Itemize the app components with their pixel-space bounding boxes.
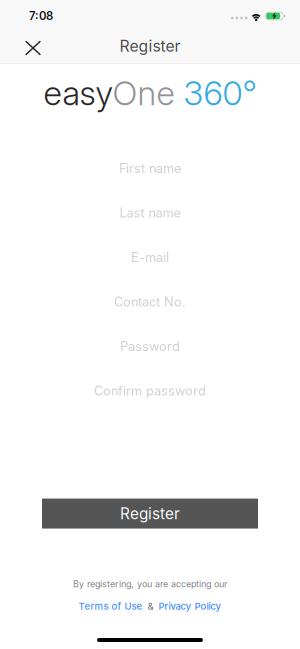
button[interactable]: Close: [25, 32, 63, 64]
button[interactable]: Register: [42, 499, 258, 529]
button[interactable]: Last name: [42, 198, 258, 228]
staticText: E-mail: [131, 250, 169, 265]
button[interactable]: Contact No.: [42, 287, 258, 317]
staticText: Contact No.: [114, 294, 186, 309]
button[interactable]: E-mail: [42, 242, 258, 272]
staticText: One: [112, 73, 174, 113]
staticText: Register: [119, 36, 180, 55]
staticText: Last name: [119, 205, 180, 220]
staticText: Password: [120, 339, 180, 354]
button[interactable]: First name: [42, 153, 258, 183]
staticText: Register: [120, 504, 180, 523]
staticText: Terms of Use: [78, 600, 142, 612]
staticText: Privacy Policy: [158, 600, 221, 612]
button[interactable]: Terms of Use: [78, 600, 147, 612]
staticText: First name: [119, 161, 181, 176]
button[interactable]: Password: [42, 331, 258, 361]
staticText: By registering, you are accepting our: [73, 579, 227, 589]
staticText: Confirm password: [94, 383, 206, 398]
staticText: easy: [43, 73, 112, 113]
staticText: 7:08: [29, 9, 53, 23]
staticText: 360°: [174, 73, 256, 113]
button[interactable]: Privacy Policy: [153, 600, 221, 612]
staticText: &: [147, 600, 153, 612]
button[interactable]: Confirm password: [42, 376, 258, 406]
